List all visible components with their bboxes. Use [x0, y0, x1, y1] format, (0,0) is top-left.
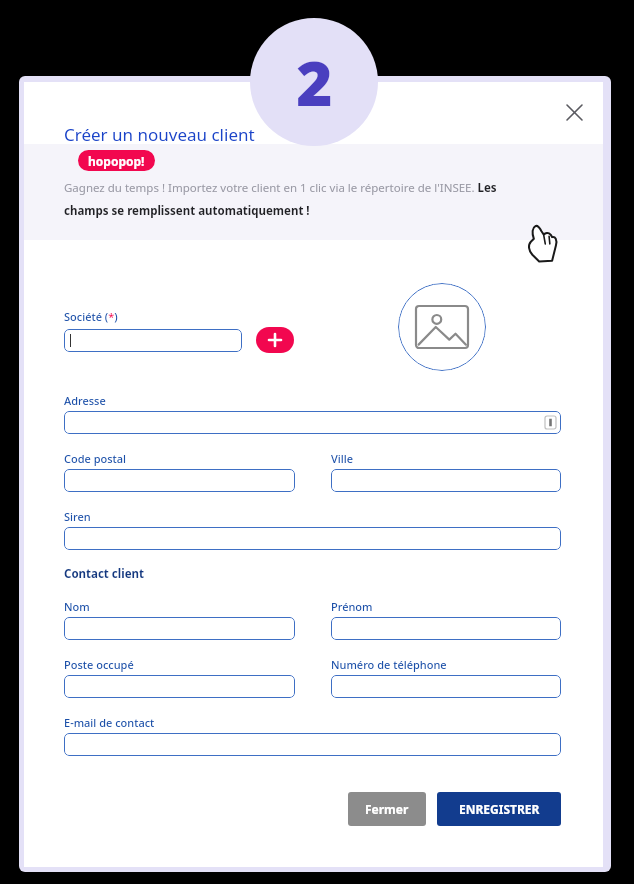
staticText: Ville [331, 451, 353, 466]
button[interactable] [331, 469, 561, 492]
button[interactable]: Ajouter un logo [398, 283, 486, 371]
button[interactable]: Fermer [348, 792, 426, 826]
staticText: Siren [64, 509, 91, 524]
staticText: Code postal [64, 451, 127, 466]
button[interactable] [64, 411, 561, 434]
staticText: Numéro de téléphone [331, 657, 447, 672]
button[interactable] [64, 675, 295, 698]
staticText: Adresse [64, 393, 106, 408]
staticText: Prénom [331, 599, 373, 614]
button[interactable]: Fermer [557, 95, 591, 129]
staticText: Poste occupé [64, 657, 134, 672]
button[interactable]: Ajouter une société [256, 327, 294, 353]
button[interactable] [64, 617, 295, 640]
button[interactable] [331, 675, 561, 698]
button[interactable] [64, 329, 242, 352]
staticText: Nom [64, 599, 90, 614]
staticText: Contact client [64, 566, 144, 582]
button[interactable] [331, 617, 561, 640]
staticText: Créer un nouveau client [64, 123, 255, 146]
button[interactable] [64, 527, 561, 550]
staticText: hopopop! [88, 153, 145, 169]
staticText: Gagnez du temps ! Importez votre client … [64, 180, 534, 218]
staticText: Société (*) [64, 309, 118, 324]
staticText: 2 [296, 40, 333, 124]
button[interactable] [64, 469, 295, 492]
staticText: ENREGISTRER [459, 801, 540, 817]
staticText: Fermer [365, 801, 409, 817]
button[interactable]: ENREGISTRER [437, 792, 561, 826]
staticText: E-mail de contact [64, 715, 155, 730]
button[interactable] [64, 733, 561, 756]
